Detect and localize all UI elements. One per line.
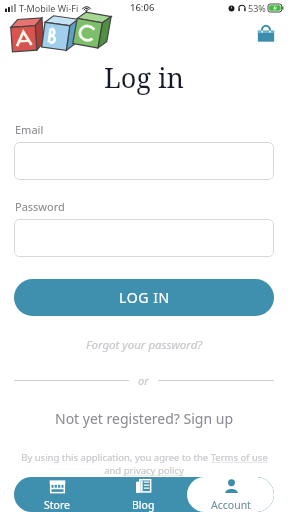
staticText: T-Mobile Wi-Fi bbox=[19, 2, 79, 14]
button[interactable]: Not yet registered? Sign up bbox=[0, 406, 288, 431]
staticText: Store bbox=[44, 498, 70, 512]
staticText: 16:06 bbox=[130, 1, 155, 14]
staticText: Account bbox=[211, 498, 251, 512]
button[interactable] bbox=[14, 219, 274, 257]
staticText: Email bbox=[15, 122, 44, 137]
staticText: By using this application, you agree to … bbox=[21, 451, 268, 464]
button[interactable]: Blog bbox=[100, 477, 187, 512]
button[interactable]: Shopping bag bbox=[254, 22, 278, 46]
staticText: Log in bbox=[104, 59, 185, 96]
staticText: and privacy policy bbox=[104, 464, 184, 477]
button[interactable]: ABC home bbox=[8, 17, 110, 51]
staticText: Forgot your password? bbox=[86, 337, 203, 353]
button[interactable]: Store bbox=[14, 477, 100, 512]
staticText: or bbox=[138, 373, 149, 388]
staticText: LOG IN bbox=[119, 288, 170, 307]
staticText: Password bbox=[15, 199, 65, 214]
staticText: Not yet registered? Sign up bbox=[55, 409, 233, 428]
button[interactable]: Forgot your password? bbox=[0, 334, 288, 356]
button[interactable] bbox=[14, 142, 274, 180]
staticText: 53% bbox=[248, 2, 266, 14]
button[interactable]: LOG IN bbox=[14, 279, 274, 316]
button[interactable]: Account bbox=[187, 477, 274, 512]
staticText: Blog bbox=[132, 498, 155, 512]
